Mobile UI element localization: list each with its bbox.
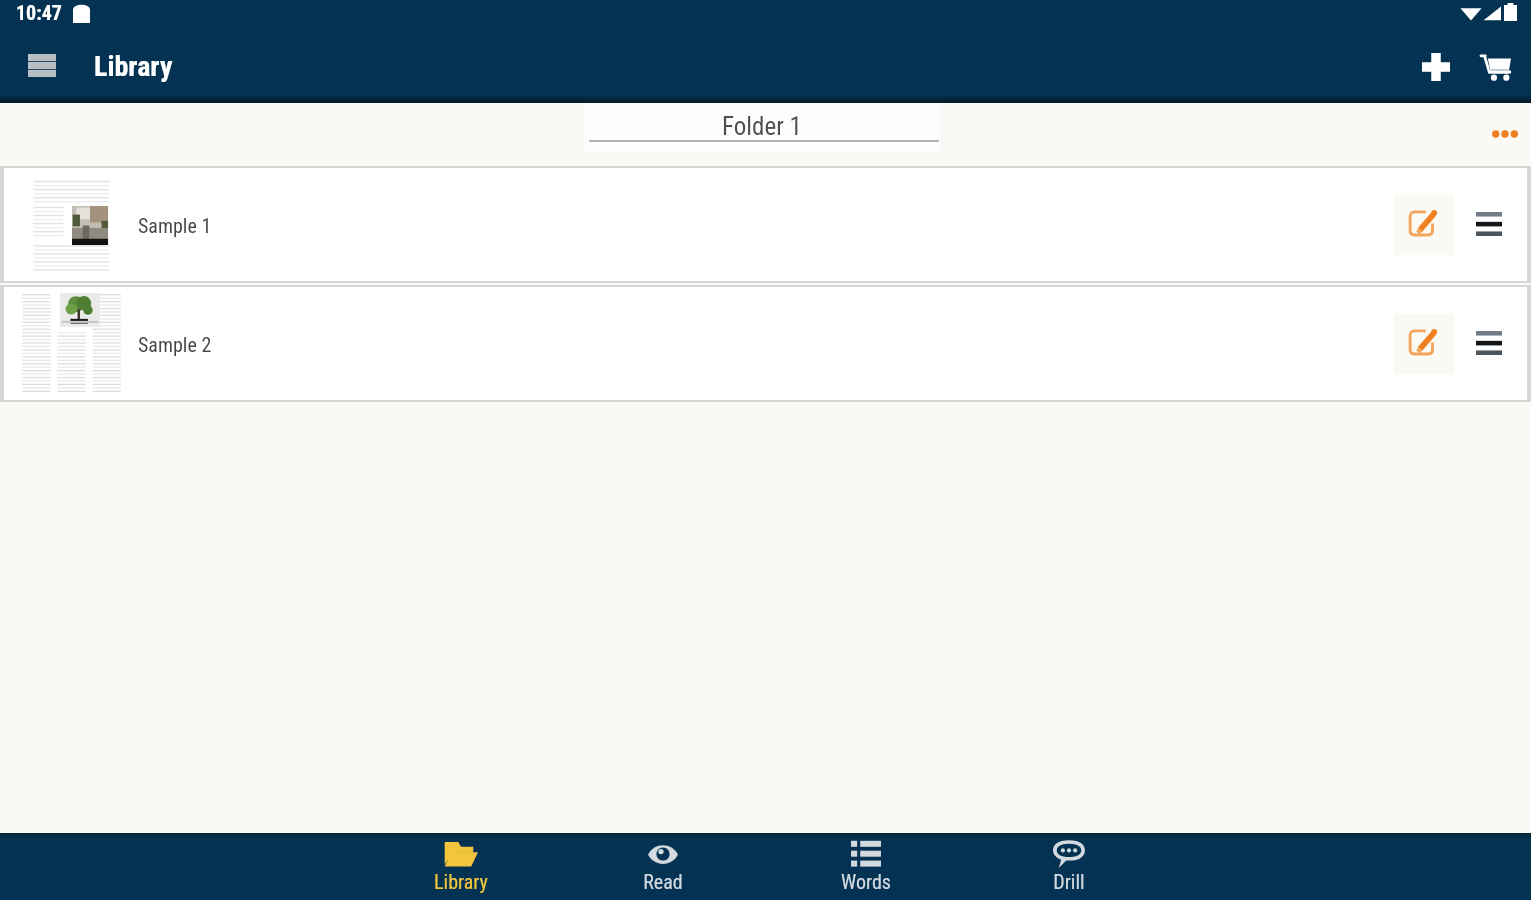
button[interactable]: Library xyxy=(411,833,511,900)
button[interactable]: Folder 1 xyxy=(584,103,940,151)
staticText: Library xyxy=(434,870,488,893)
staticText: 10:47 xyxy=(16,1,62,24)
button[interactable] xyxy=(4,168,1527,281)
button[interactable]: Read xyxy=(613,833,713,900)
staticText: Drill xyxy=(1053,870,1085,893)
staticText: Words xyxy=(841,870,891,893)
button[interactable]: Shopping cart xyxy=(1469,41,1521,93)
staticText: Sample 1 xyxy=(138,214,212,237)
button[interactable]: Edit xyxy=(1394,195,1454,255)
button[interactable]: Words xyxy=(816,833,916,900)
button[interactable]: Drill xyxy=(1019,833,1119,900)
staticText: Read xyxy=(643,870,683,893)
button[interactable]: Edit xyxy=(1394,314,1454,374)
button[interactable]: Add xyxy=(1410,41,1462,93)
button[interactable]: Reorder xyxy=(1465,200,1513,248)
button[interactable]: Navigation menu xyxy=(16,39,68,91)
staticText: Folder 1 xyxy=(722,112,802,141)
staticText: Library xyxy=(94,50,173,83)
button[interactable]: Reorder xyxy=(1465,319,1513,367)
button[interactable] xyxy=(4,287,1527,400)
button[interactable]: More options xyxy=(1477,111,1531,157)
staticText: Sample 2 xyxy=(138,333,212,356)
